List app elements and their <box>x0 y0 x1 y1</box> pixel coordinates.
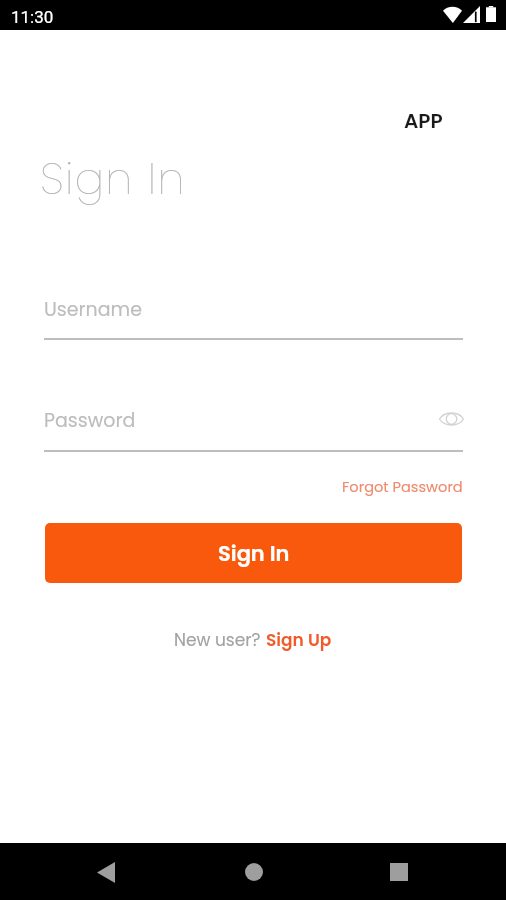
button[interactable]: Show password <box>437 405 465 433</box>
button[interactable]: Username <box>44 288 463 335</box>
button[interactable]: Back <box>82 848 130 896</box>
staticText: Forgot Password <box>342 477 463 497</box>
staticText: New user? <box>174 628 266 652</box>
button[interactable]: Sign Up <box>266 628 332 652</box>
button[interactable]: Recent apps <box>375 848 423 896</box>
button[interactable]: Home <box>230 848 278 896</box>
button[interactable]: Forgot Password <box>336 471 457 491</box>
staticText: Password <box>44 407 136 434</box>
button[interactable]: Password <box>44 399 463 446</box>
staticText: APP <box>404 107 443 135</box>
staticText: Sign In <box>40 148 186 210</box>
staticText: Sign Up <box>266 628 332 652</box>
staticText: 11:30 <box>11 7 54 27</box>
staticText: Username <box>44 296 142 323</box>
staticText: Sign In <box>218 539 290 568</box>
button[interactable]: Sign In <box>45 523 462 583</box>
button[interactable]: APP <box>404 107 443 135</box>
